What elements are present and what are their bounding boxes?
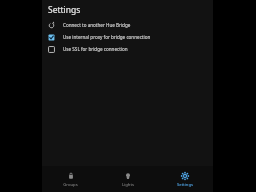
button[interactable]: Unchecked [42, 43, 213, 55]
staticText: Groups [63, 182, 78, 188]
button[interactable]: Checked [42, 31, 213, 43]
button[interactable]: Unchecked [48, 46, 55, 53]
staticText: Settings [48, 4, 81, 16]
button[interactable]: Groups [42, 166, 99, 192]
staticText: Use internal proxy for bridge connection [63, 34, 151, 40]
staticText: Settings [177, 182, 193, 188]
button[interactable]: Lights [99, 166, 156, 192]
staticText: Connect to another Hue Bridge [63, 22, 131, 28]
button[interactable]: Checked [48, 34, 55, 41]
button[interactable]: Settings [156, 166, 213, 192]
staticText: Lights [122, 182, 134, 188]
staticText: Use SSL for bridge connection [63, 46, 128, 52]
button[interactable]: Connect to another Hue Bridge [42, 19, 213, 31]
